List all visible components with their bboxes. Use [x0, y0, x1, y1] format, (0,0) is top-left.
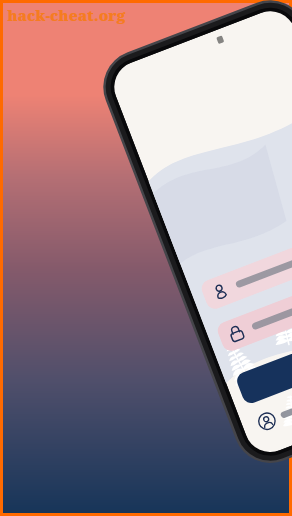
button[interactable]: Login screen phone preview [3, 3, 289, 513]
staticText: hack-cheat.org [7, 5, 126, 25]
